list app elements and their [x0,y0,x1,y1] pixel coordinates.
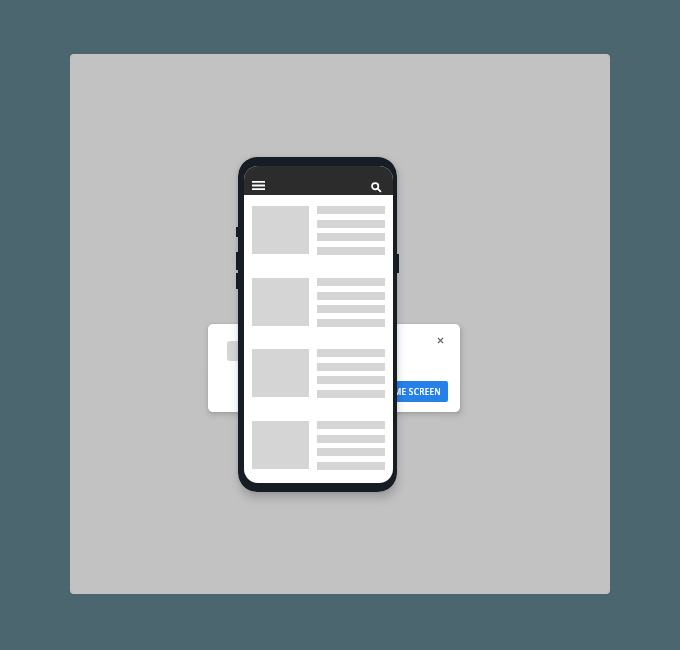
button[interactable]: Close [431,331,449,349]
staticText: ADD TO HOME SCREEN [346,386,441,397]
button[interactable] [244,421,393,483]
button[interactable]: Open navigation menu [245,174,271,197]
button[interactable] [244,206,393,278]
button[interactable]: Search [364,176,388,199]
button[interactable]: ADD TO HOME SCREEN [340,381,448,402]
button[interactable] [244,349,393,421]
button[interactable]: Close [208,324,460,412]
button[interactable] [244,278,393,350]
